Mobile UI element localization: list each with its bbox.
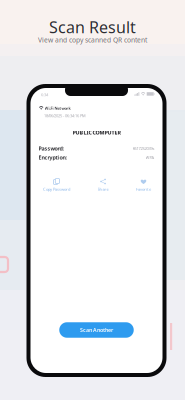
staticText: Copy Password: [43, 186, 70, 192]
button[interactable]: Favorite: [136, 178, 151, 192]
staticText: Scan Result: [49, 16, 136, 38]
staticText: View and copy scanned QR content: [38, 36, 147, 44]
button[interactable]: Scan Another: [59, 322, 134, 338]
staticText: 86172S2039s: [132, 146, 154, 151]
staticText: WPA: [145, 155, 154, 160]
staticText: Share: [97, 186, 108, 192]
staticText: 6:34: [41, 92, 48, 97]
staticText: PUBLIC COMPUTER: [72, 129, 120, 136]
staticText: 18/06/2025 - 06:34:16 PM: [44, 113, 86, 118]
staticText: Favorite: [136, 186, 151, 192]
button[interactable]: Copy Password: [43, 178, 70, 192]
button[interactable]: Share: [97, 178, 108, 192]
staticText: Password:: [38, 145, 63, 152]
staticText: Wi-Fi Network: [44, 106, 70, 111]
staticText: Scan Another: [80, 326, 113, 334]
staticText: Encryption:: [38, 154, 66, 161]
